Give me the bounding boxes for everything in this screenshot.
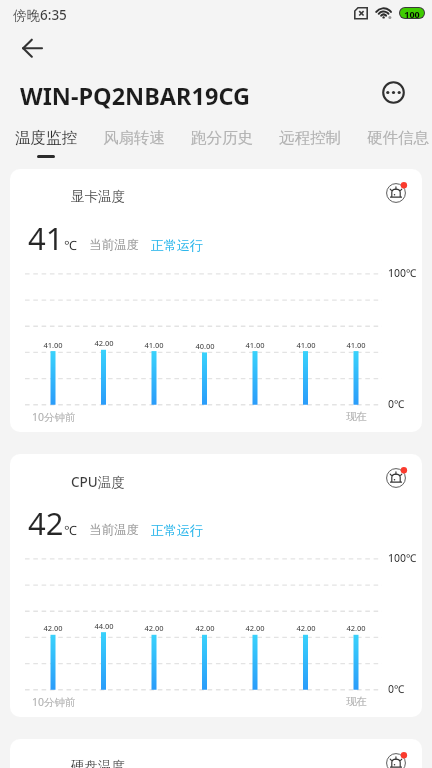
staticText: 远程控制 [279, 128, 341, 148]
staticText: 10分钟前 [32, 695, 76, 709]
staticText: 跑分历史 [191, 128, 253, 148]
staticText: 42.00 [292, 623, 320, 633]
button[interactable]: 显卡温度 [10, 169, 422, 432]
button[interactable]: More options [381, 80, 405, 104]
button[interactable]: Alarm settings [380, 177, 412, 209]
staticText: 41.00 [342, 340, 370, 350]
staticText: 42.00 [342, 623, 370, 633]
other: WiFi [374, 5, 393, 20]
button[interactable]: Back [18, 34, 46, 62]
staticText: 100℃ [388, 266, 417, 280]
staticText: 42.00 [241, 623, 269, 633]
staticText: WIN-PQ2NBAR19CG [20, 80, 251, 112]
staticText: 硬件信息 [367, 128, 429, 148]
staticText: 100℃ [388, 551, 417, 565]
staticText: 42.00 [191, 623, 219, 633]
staticText: ℃ [64, 521, 77, 539]
staticText: 42 [28, 502, 64, 544]
button[interactable]: CPU温度 [10, 454, 422, 717]
staticText: 42.00 [140, 623, 168, 633]
staticText: 现在 [346, 410, 367, 423]
staticText: 正常运行 [151, 522, 203, 538]
button[interactable]: 远程控制 [267, 128, 353, 164]
staticText: 温度监控 [15, 128, 77, 148]
staticText: ℃ [64, 236, 77, 254]
staticText: CPU温度 [71, 473, 125, 491]
staticText: 硬盘温度 [71, 758, 125, 768]
staticText: 41.00 [292, 340, 320, 350]
staticText: 44.00 [90, 621, 118, 631]
staticText: 41 [28, 217, 64, 259]
staticText: 42.00 [39, 623, 67, 633]
staticText: 风扇转速 [103, 128, 165, 148]
staticText: 显卡温度 [71, 188, 125, 205]
staticText: 傍晚6:35 [13, 6, 67, 24]
button[interactable]: Alarm settings [380, 462, 412, 494]
staticText: 41.00 [241, 340, 269, 350]
staticText: 当前温度 [89, 237, 139, 253]
other: No SIM card [354, 7, 368, 20]
staticText: 当前温度 [89, 522, 139, 538]
button[interactable]: 硬件信息 [355, 128, 432, 164]
button[interactable]: 跑分历史 [179, 128, 265, 164]
staticText: 0℃ [388, 682, 405, 696]
staticText: 现在 [346, 695, 367, 708]
staticText: 正常运行 [151, 237, 203, 253]
button[interactable]: 风扇转速 [91, 128, 177, 164]
staticText: 41.00 [140, 340, 168, 350]
staticText: 0℃ [388, 397, 405, 411]
button[interactable]: Alarm settings [380, 747, 412, 768]
button[interactable]: 温度监控 [3, 128, 89, 164]
staticText: 42.00 [90, 338, 118, 348]
staticText: 10分钟前 [32, 410, 76, 424]
staticText: 40.00 [191, 341, 219, 351]
staticText: 41.00 [39, 340, 67, 350]
staticText: 100 [399, 8, 425, 20]
button[interactable]: 硬盘温度 [10, 739, 422, 768]
